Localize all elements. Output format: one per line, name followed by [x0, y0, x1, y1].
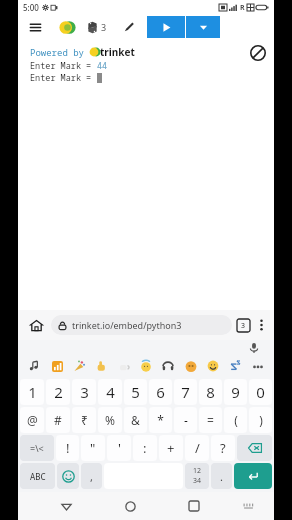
button[interactable]: More options [254, 315, 268, 335]
staticText: trinket [100, 45, 135, 59]
button[interactable]: Stop [250, 45, 266, 61]
button[interactable]: ' [107, 435, 131, 461]
button[interactable]: Thumbs up [93, 358, 109, 374]
staticText: 5:00 [23, 2, 39, 13]
button[interactable]: 5 [124, 379, 147, 405]
button[interactable]: Numbers [185, 463, 209, 489]
staticText: ! [66, 439, 70, 457]
staticText: trinket.io/embed/python3 [72, 319, 182, 331]
button[interactable]: ! [56, 435, 79, 461]
staticText: 3 [80, 382, 89, 402]
button[interactable]: * [149, 407, 172, 433]
button[interactable]: 1 [20, 379, 44, 405]
button[interactable]: Smiling face [205, 358, 221, 374]
button[interactable]: Menu [18, 15, 52, 39]
staticText: - [184, 412, 188, 428]
button[interactable]: 2 [46, 379, 70, 405]
button[interactable]: Tabs [237, 319, 250, 332]
button[interactable]: ( [224, 407, 247, 433]
button[interactable]: - [174, 407, 197, 433]
button[interactable]: Backspace [237, 435, 272, 461]
staticText: 4 [106, 382, 115, 402]
button[interactable]: Run [147, 16, 185, 38]
staticText: =\< [30, 442, 44, 454]
staticText: 1 [28, 382, 37, 402]
button[interactable]: ABC [20, 463, 55, 489]
button[interactable]: More emoji [250, 358, 266, 374]
staticText: . [220, 469, 223, 484]
staticText: * [157, 412, 164, 428]
button[interactable]: Trinket [52, 15, 82, 39]
staticText: ( [234, 412, 238, 428]
button[interactable]: Party popper [71, 358, 87, 374]
staticText: : [143, 439, 147, 457]
button[interactable]: 8 [199, 379, 222, 405]
button[interactable]: Edit [111, 15, 147, 39]
button[interactable]: trinket.io/embed/python3 [51, 315, 232, 335]
button[interactable]: = [199, 407, 222, 433]
staticText: ABC [30, 471, 46, 482]
button[interactable]: ? [211, 435, 235, 461]
staticText: / [195, 439, 200, 457]
staticText: 3 [241, 321, 246, 331]
button[interactable]: : [133, 435, 157, 461]
button[interactable]: @ [20, 407, 44, 433]
button[interactable]: # [46, 407, 70, 433]
button[interactable]: Sleepy face [183, 358, 199, 374]
button[interactable]: Headphones [160, 358, 176, 374]
button[interactable]: 3 [86, 15, 107, 39]
button[interactable]: 3 [72, 379, 96, 405]
button[interactable]: More run options [186, 16, 220, 38]
staticText: , [90, 469, 93, 484]
button[interactable]: 0 [249, 379, 272, 405]
button[interactable]: Hot beverage [116, 358, 132, 374]
button[interactable]: Home [24, 313, 48, 337]
button[interactable]: 4 [98, 379, 122, 405]
staticText: Enter Mark = [30, 72, 97, 84]
staticText: 34 [193, 476, 202, 486]
staticText: ) [259, 412, 263, 428]
button[interactable]: ₹ [72, 407, 96, 433]
staticText: # [54, 412, 62, 428]
button[interactable]: Zzz [227, 358, 243, 374]
staticText: 9 [231, 382, 240, 402]
staticText: 12 [193, 466, 202, 476]
button[interactable]: Symbols [20, 435, 54, 461]
staticText: ₹ [81, 412, 88, 428]
button[interactable]: Emoji [57, 463, 79, 489]
button[interactable]: 7 [174, 379, 197, 405]
button[interactable]: Back [53, 493, 79, 519]
staticText: ? [220, 439, 226, 457]
button[interactable]: 6 [149, 379, 172, 405]
button[interactable]: Smiling face with halo [138, 358, 154, 374]
button[interactable]: % [98, 407, 122, 433]
staticText: Enter Mark = [30, 60, 97, 72]
staticText: " [90, 439, 96, 457]
button[interactable]: Hide keyboard [237, 495, 259, 517]
button[interactable]: ) [249, 407, 272, 433]
button[interactable]: , [81, 463, 102, 489]
button[interactable]: . [211, 463, 232, 489]
staticText: R [240, 3, 245, 13]
staticText: @ [27, 412, 38, 428]
button[interactable]: & [124, 407, 147, 433]
button[interactable]: Voice input [248, 342, 260, 354]
button[interactable]: Music notes [26, 358, 42, 374]
button[interactable]: Recent apps [181, 493, 207, 519]
button[interactable]: Enter [234, 463, 272, 489]
staticText: ' [118, 439, 121, 457]
button[interactable]: Chart [49, 358, 65, 374]
staticText: 3 [101, 21, 107, 33]
button[interactable]: / [185, 435, 209, 461]
staticText: 44 [97, 60, 108, 72]
button[interactable]: + [159, 435, 183, 461]
staticText: % [105, 412, 115, 428]
staticText: + [167, 439, 175, 457]
staticText: 2 [54, 382, 63, 402]
staticText: 7 [181, 382, 190, 402]
button[interactable]: Home [117, 493, 143, 519]
staticText: & [131, 412, 140, 428]
button[interactable]: 9 [224, 379, 247, 405]
button[interactable]: " [81, 435, 105, 461]
